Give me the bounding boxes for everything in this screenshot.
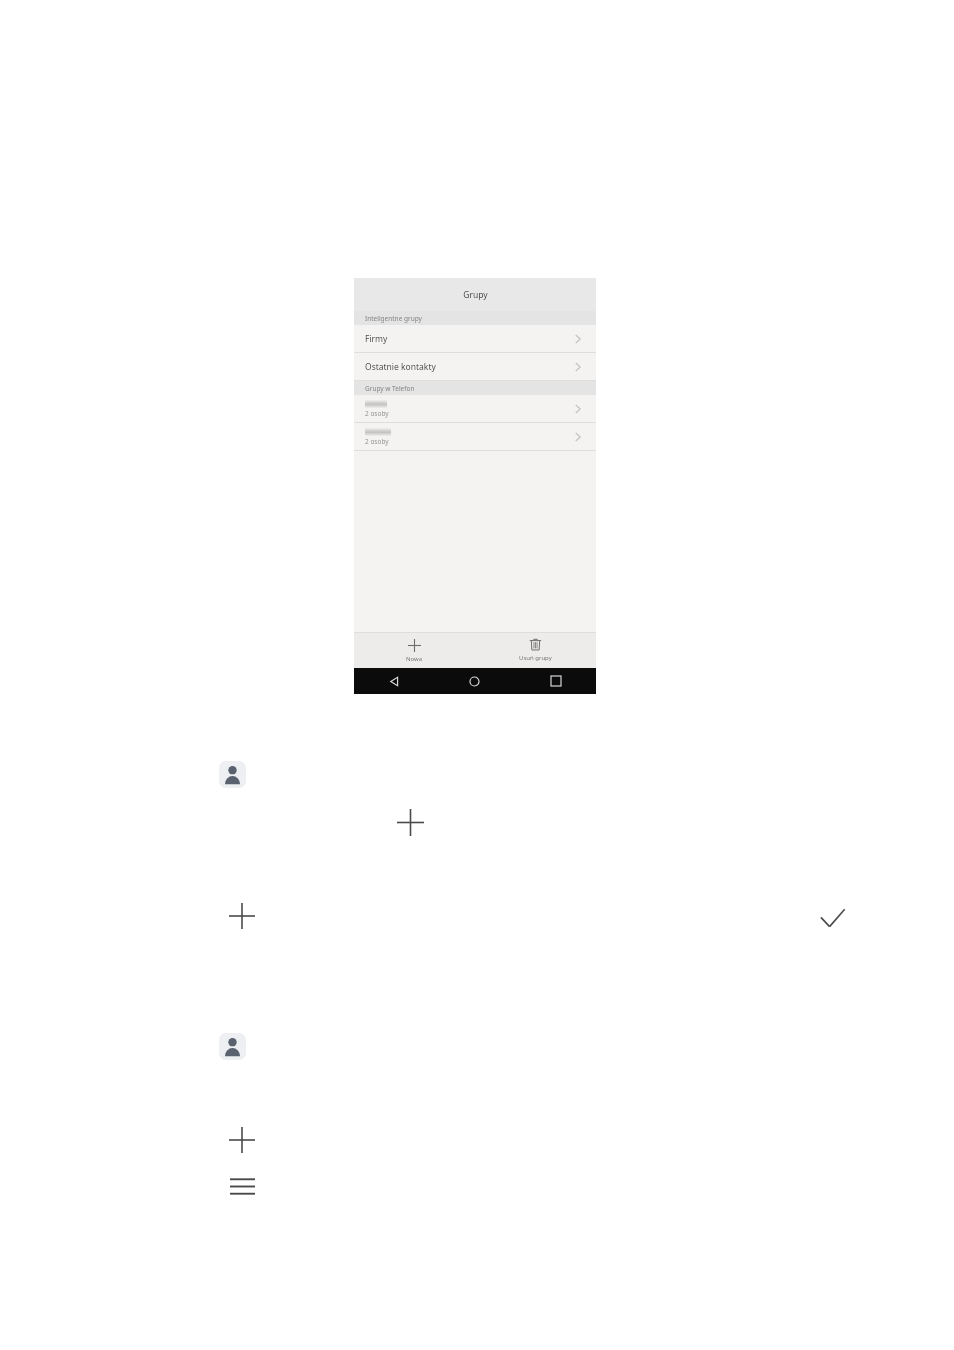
staticText: 2 osoby <box>365 409 389 418</box>
button[interactable]: Recents <box>515 668 596 694</box>
staticText: Ostatnie kontakty <box>365 361 436 373</box>
button[interactable]: 2 osoby <box>354 423 596 450</box>
button[interactable]: Usuń grupy <box>475 633 596 668</box>
button[interactable]: Add <box>229 1127 255 1153</box>
button[interactable]: Confirm <box>818 904 847 933</box>
staticText: Inteligentne grupy <box>365 314 422 323</box>
button[interactable]: Ostatnie kontakty <box>354 353 596 380</box>
staticText: Grupy <box>463 289 488 301</box>
button[interactable]: Home <box>434 668 515 694</box>
button[interactable]: Add <box>397 809 424 836</box>
staticText: 2 osoby <box>365 437 389 446</box>
button[interactable]: Contacts <box>219 761 246 788</box>
button[interactable]: Nowa <box>354 633 475 668</box>
button[interactable]: 2 osoby <box>354 395 596 422</box>
button[interactable]: Menu <box>230 1177 255 1196</box>
button[interactable]: Firmy <box>354 325 596 352</box>
button[interactable]: Back <box>354 668 434 694</box>
staticText: Firmy <box>365 333 388 345</box>
staticText: Usuń grupy <box>519 654 552 662</box>
staticText: Grupy w Telefon <box>365 384 415 393</box>
button[interactable]: Add <box>229 903 255 929</box>
staticText: Nowa <box>406 655 423 663</box>
button[interactable]: Contacts <box>219 1033 246 1060</box>
